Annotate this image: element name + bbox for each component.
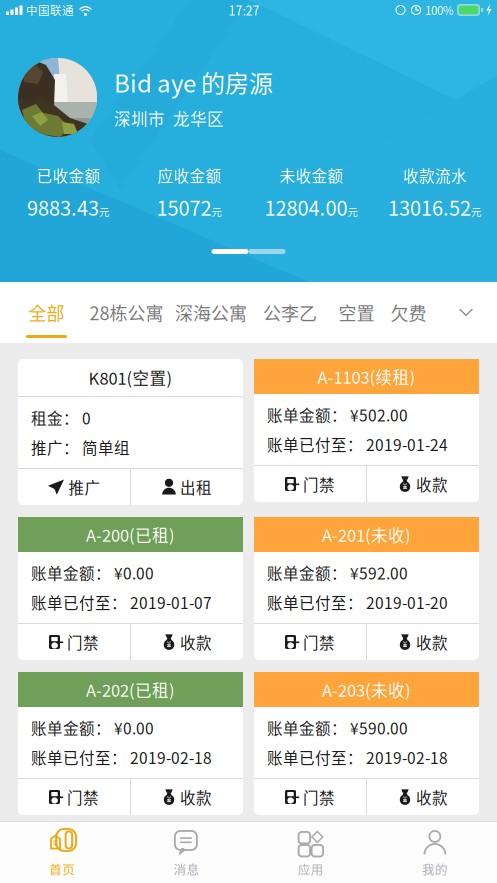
staticText: ¥592.00 [347,562,408,584]
button[interactable]: 全部 [28,282,65,343]
staticText: 元 [471,204,482,219]
staticText: 收款 [180,631,212,653]
button[interactable]: 门禁 [254,466,366,502]
button[interactable]: 收款 [367,779,479,815]
button[interactable]: 门禁 [18,624,130,660]
button[interactable]: 门禁 [254,624,366,660]
staticText: 消息 [173,860,199,878]
staticText: 0 [79,407,91,429]
staticText: 欠费 [390,299,426,326]
staticText: ¥0.00 [111,717,154,739]
button[interactable]: 空置 [338,282,375,343]
staticText: 租金： [31,407,79,429]
button[interactable]: 公李乙 [263,282,317,343]
staticText: 账单金额： [31,562,111,584]
staticText: Bid aye 的房源 [114,65,273,99]
staticText: 收款 [416,786,448,808]
staticText: A-1103(续租) [317,365,415,388]
staticText: 出租 [180,476,212,498]
button[interactable]: 收款 [367,466,479,502]
button[interactable]: 深海公寓 [175,282,247,343]
staticText: ¥590.00 [347,717,408,739]
button[interactable]: 收款 [367,624,479,660]
button[interactable]: 推广 [18,469,130,505]
button[interactable]: 首页 [0,822,124,883]
staticText: 账单金额： [31,717,111,739]
staticText: 空置 [338,299,374,326]
staticText: 推广 [68,476,100,498]
button[interactable]: 门禁 [254,779,366,815]
staticText: K801(空置) [88,366,172,389]
staticText: 账单已付至： [31,746,127,768]
staticText: ¥502.00 [347,404,408,426]
button[interactable]: 应用 [248,822,373,883]
staticText: 应用 [298,860,324,878]
staticText: 账单金额： [267,562,347,584]
staticText: 门禁 [67,631,99,653]
button[interactable]: 我的 [373,822,497,883]
staticText: 账单已付至： [267,746,363,768]
staticText: 门禁 [303,473,335,495]
staticText: 2019-02-18 [363,746,448,768]
staticText: 2019-01-07 [127,591,212,613]
staticText: A-203(未收) [322,678,411,701]
staticText: 深圳市 龙华区 [114,106,224,130]
staticText: A-200(已租) [86,523,175,546]
staticText: ¥0.00 [111,562,154,584]
button[interactable]: 门禁 [18,779,130,815]
staticText: 收款 [416,473,448,495]
staticText: 推广： [31,436,79,458]
staticText: 账单已付至： [267,591,363,613]
staticText: 未收金额 [279,164,343,186]
staticText: 门禁 [303,786,335,808]
staticText: 12804.00 [264,192,347,221]
staticText: 2019-02-18 [127,746,212,768]
staticText: A-202(已租) [86,678,175,701]
staticText: 收款 [416,631,448,653]
staticText: 元 [211,204,222,219]
button[interactable]: 28栋公寓 [84,282,169,343]
button[interactable]: 欠费 [390,282,427,343]
staticText: 2019-01-20 [363,591,448,613]
button[interactable]: 收款 [131,779,243,815]
staticText: 账单已付至： [31,591,127,613]
staticText: A-201(未收) [322,523,411,546]
staticText: 深海公寓 [175,299,247,326]
staticText: 门禁 [303,631,335,653]
staticText: 9883.43 [27,192,99,221]
staticText: 17:27 [228,1,259,19]
staticText: 我的 [422,860,448,878]
button[interactable]: 展开筛选 [457,282,475,343]
staticText: 收款流水 [403,164,467,186]
staticText: 账单已付至： [267,433,363,455]
button[interactable]: 出租 [131,469,243,505]
staticText: 首页 [49,860,75,878]
staticText: 简单组 [79,436,130,458]
staticText: 账单金额： [267,717,347,739]
button[interactable]: 消息 [124,822,248,883]
staticText: 账单金额： [267,404,347,426]
staticText: 元 [99,204,110,219]
staticText: 28栋公寓 [89,299,163,326]
staticText: 收款 [180,786,212,808]
staticText: 全部 [28,299,64,326]
staticText: 13016.52 [388,192,471,221]
staticText: 100% [425,2,454,18]
staticText: 公李乙 [263,299,317,326]
button[interactable]: 收款 [131,624,243,660]
staticText: 应收金额 [157,164,221,186]
staticText: 元 [347,204,358,219]
staticText: 门禁 [67,786,99,808]
staticText: 15072 [156,192,211,221]
staticText: 中国联通 [26,2,74,18]
staticText: 2019-01-24 [363,433,448,455]
staticText: 已收金额 [36,164,100,186]
